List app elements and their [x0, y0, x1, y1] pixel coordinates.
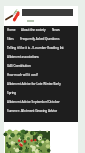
staticText: GAS Constitution — [7, 64, 31, 68]
button[interactable]: About the society — [21, 28, 52, 32]
button[interactable]: News — [52, 28, 60, 32]
staticText: Allotment Advice for Late Winter/Early — [7, 82, 61, 86]
button[interactable]: Spring — [7, 91, 17, 95]
staticText: How much will it cost? — [7, 73, 39, 77]
button[interactable]: Telling it like it is - E-number Reading… — [7, 46, 64, 50]
staticText: Home — [7, 28, 16, 32]
other: Society logo — [5, 9, 20, 21]
staticText: News — [52, 28, 60, 32]
staticText: Frequently Asked Questions — [20, 37, 60, 41]
button[interactable]: Allotment associations — [7, 55, 39, 59]
staticText: Sites — [7, 37, 14, 41]
staticText: Allotment associations — [7, 55, 39, 59]
button[interactable]: Summer: Allotment Growing Advice — [7, 109, 58, 113]
button[interactable]: Allotment Advice September/October — [7, 100, 60, 104]
button[interactable]: GAS Constitution — [7, 64, 31, 68]
staticText: About the society — [21, 28, 46, 32]
staticText: Spring — [7, 91, 17, 95]
staticText: Telling it like it is - E-number Reading… — [7, 46, 64, 50]
staticText: Allotment Advice September/October — [7, 100, 60, 104]
button[interactable]: How much will it cost? — [7, 73, 39, 77]
button[interactable]: Sites — [7, 37, 20, 41]
button[interactable]: Frequently Asked Questions — [20, 37, 60, 41]
button[interactable]: Allotment Advice for Late Winter/Early — [7, 82, 61, 86]
button[interactable]: Home — [7, 28, 21, 32]
staticText: Summer: Allotment Growing Advice — [7, 109, 58, 113]
